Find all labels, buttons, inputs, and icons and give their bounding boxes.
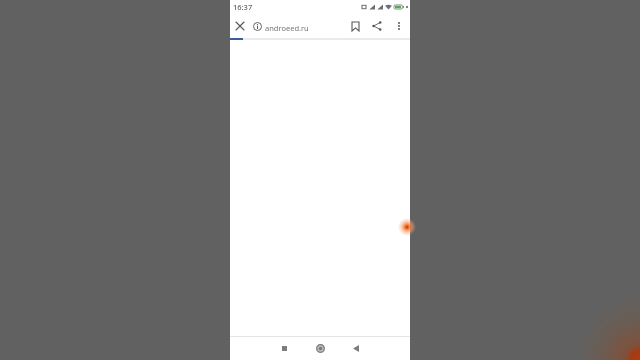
button[interactable]: Back — [343, 337, 369, 360]
button[interactable]: Share — [366, 15, 388, 37]
button[interactable]: Bookmark — [344, 15, 366, 37]
button[interactable]: More options — [388, 15, 410, 37]
staticText: androeed.ru — [265, 23, 309, 33]
button[interactable]: Close — [230, 16, 250, 36]
button[interactable]: androeed.ru — [250, 14, 344, 38]
staticText: 16:37 — [233, 2, 253, 12]
button[interactable]: Recent apps — [271, 337, 297, 360]
button[interactable]: Home — [307, 337, 333, 360]
